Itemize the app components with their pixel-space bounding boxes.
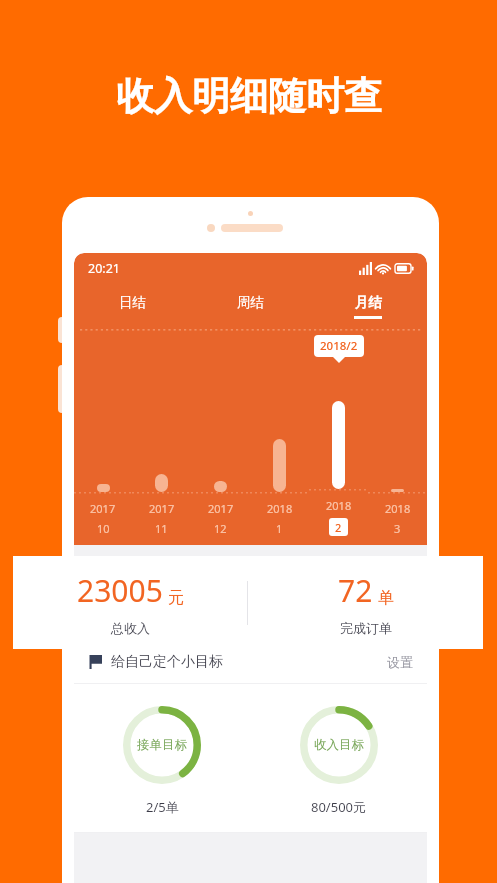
staticText: 2018	[326, 498, 352, 513]
staticText: 2017	[90, 501, 116, 516]
button[interactable]: 月结	[309, 283, 427, 329]
staticText: 11	[155, 521, 168, 536]
staticText: 设置	[387, 654, 413, 670]
button[interactable]: 2017	[74, 331, 132, 536]
staticText: 12	[214, 521, 227, 536]
staticText: 2	[335, 520, 342, 535]
staticText: 23005	[77, 570, 163, 611]
staticText: 72	[338, 570, 373, 611]
staticText: 总收入	[111, 620, 150, 636]
button[interactable]: 日结	[74, 283, 191, 329]
button[interactable]: 2017	[191, 331, 250, 536]
staticText: 20:21	[88, 260, 120, 277]
button[interactable]: 2018/2	[309, 331, 368, 536]
staticText: 2018	[385, 501, 411, 516]
button[interactable]: 2017	[132, 331, 191, 536]
staticText: 接单目标	[137, 737, 187, 753]
button[interactable]: 周结	[191, 283, 309, 329]
staticText: 2018/2	[320, 338, 358, 354]
staticText: 收入明细随时查	[116, 72, 382, 120]
staticText: 单	[378, 588, 394, 608]
button[interactable]: 2018	[250, 331, 309, 536]
staticText: 2017	[149, 501, 175, 516]
staticText: 1	[276, 521, 283, 536]
staticText: 日结	[119, 294, 146, 311]
button[interactable]: 23005	[13, 556, 247, 649]
staticText: 2/5单	[146, 798, 179, 816]
staticText: 10	[97, 521, 110, 536]
staticText: 月结	[355, 294, 382, 311]
staticText: 周结	[237, 294, 264, 311]
staticText: 2017	[208, 501, 234, 516]
staticText: 3	[394, 521, 401, 536]
staticText: 80/500元	[311, 798, 367, 816]
button[interactable]: 2018	[368, 331, 427, 536]
button[interactable]: 接单目标	[74, 706, 250, 816]
staticText: 元	[168, 588, 184, 608]
button[interactable]: 给自己定个小目标	[88, 641, 413, 683]
button[interactable]: 收入目标	[250, 706, 427, 816]
staticText: 2018	[267, 501, 293, 516]
staticText: 收入目标	[314, 737, 364, 753]
staticText: 完成订单	[340, 620, 392, 636]
button[interactable]: 72	[248, 556, 483, 649]
staticText: 给自己定个小目标	[111, 653, 223, 671]
